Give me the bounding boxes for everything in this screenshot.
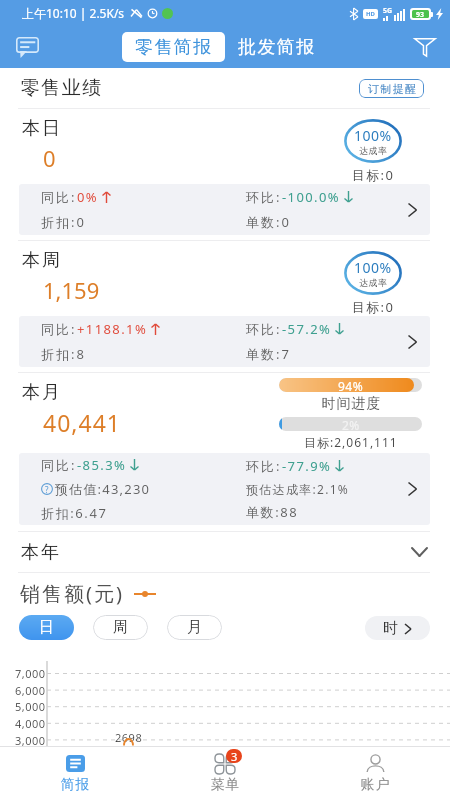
button[interactable]: 本年	[0, 532, 450, 572]
staticText: 目标:2,061,111	[304, 434, 398, 450]
staticText: 菜单	[210, 776, 240, 794]
staticText: 0	[43, 143, 56, 173]
button[interactable]: 月	[167, 615, 222, 640]
staticText: 环比:	[246, 457, 282, 475]
staticText: 5G	[383, 6, 393, 16]
button[interactable]: 账户	[300, 747, 450, 800]
staticText: 预估值:43,230	[55, 480, 151, 498]
staticText: 预估达成率:2.1%	[246, 481, 350, 497]
staticText: 达成率	[359, 277, 388, 288]
staticText: 4,000	[15, 716, 46, 731]
staticText: 5,000	[15, 699, 46, 714]
staticText: 目标:0	[352, 166, 395, 184]
staticText: 单数:0	[246, 213, 291, 231]
staticText: 同比:	[41, 456, 77, 474]
staticText: -57.2%	[282, 320, 332, 338]
staticText: 0%	[77, 188, 99, 206]
staticText: 折扣:6.47	[41, 504, 108, 522]
staticText: 2698	[115, 730, 143, 745]
button[interactable]: 订制提醒	[359, 79, 424, 98]
staticText: 单数:7	[246, 345, 291, 363]
staticText: 账户	[360, 776, 390, 794]
button[interactable]: 时	[365, 616, 430, 640]
staticText: 环比:	[246, 188, 282, 206]
staticText: 100%	[354, 258, 392, 277]
staticText: 订制提醒	[367, 82, 417, 96]
button[interactable]: Filter	[408, 30, 442, 64]
staticText: 折扣:0	[41, 213, 86, 231]
staticText: 100%	[354, 126, 392, 145]
staticText: 日	[39, 618, 54, 637]
staticText: 单数:88	[246, 503, 299, 521]
staticText: 上午10:10 | 2.5K/s	[22, 5, 125, 21]
button[interactable]: 3	[150, 747, 300, 800]
staticText: 简报	[60, 776, 90, 794]
staticText: 2%	[342, 417, 360, 431]
staticText: 3	[231, 749, 238, 763]
staticText: 批发简报	[238, 36, 316, 59]
staticText: 同比:	[41, 188, 77, 206]
staticText: 1,159	[43, 275, 100, 305]
button[interactable]: 批发简报	[225, 32, 328, 62]
staticText: 本年	[20, 541, 60, 564]
staticText: 时	[383, 619, 398, 638]
button[interactable]: 周	[93, 615, 148, 640]
staticText: 零售业绩	[20, 76, 102, 100]
staticText: -85.3%	[77, 456, 127, 474]
staticText: 同比:	[41, 320, 77, 338]
button[interactable]: 日	[19, 615, 74, 640]
staticText: 达成率	[359, 145, 388, 156]
staticText: 本周	[21, 249, 61, 272]
staticText: -100.0%	[282, 188, 341, 206]
staticText: -77.9%	[282, 457, 332, 475]
staticText: 7,000	[15, 666, 46, 681]
staticText: 零售简报	[135, 36, 213, 59]
staticText: 月	[187, 618, 202, 637]
staticText: 本月	[21, 381, 61, 404]
staticText: 周	[113, 618, 128, 637]
staticText: 时间进度	[321, 395, 381, 413]
staticText: HD	[366, 10, 375, 18]
button[interactable]: 简报	[0, 747, 150, 800]
staticText: 3,000	[15, 733, 46, 746]
staticText: 环比:	[246, 320, 282, 338]
staticText: 本日	[21, 117, 61, 140]
staticText: 折扣:8	[41, 345, 86, 363]
button[interactable]: 同比:	[19, 184, 430, 235]
staticText: ?	[45, 484, 49, 495]
staticText: 6,000	[15, 683, 46, 698]
button[interactable]: Messages	[10, 30, 44, 64]
staticText: 94%	[338, 378, 364, 392]
staticText: 销售额(元)	[19, 580, 123, 607]
button[interactable]: 零售简报	[122, 32, 225, 62]
staticText: 目标:0	[352, 298, 395, 316]
staticText: 40,441	[43, 407, 121, 438]
staticText: +1188.1%	[77, 320, 148, 338]
button[interactable]: 同比:	[19, 453, 430, 525]
staticText: 93	[416, 10, 425, 18]
button[interactable]: 同比:	[19, 316, 430, 367]
